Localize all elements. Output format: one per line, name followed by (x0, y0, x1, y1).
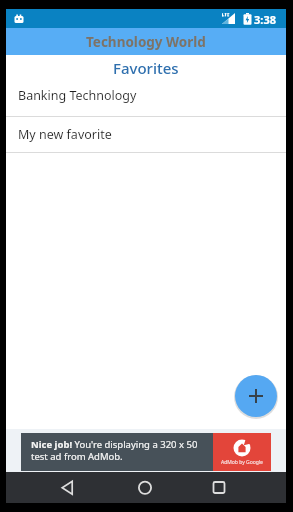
staticText: Nice job! You're displaying a 320 x 50 t… (31, 438, 198, 463)
staticText: 3:38 (254, 12, 276, 27)
button[interactable] (211, 480, 227, 496)
staticText: My new favorite (18, 126, 112, 143)
button[interactable]: My new favorite (6, 117, 286, 152)
staticText: AdMob by Google (221, 459, 263, 466)
button[interactable]: Banking Technology (6, 77, 286, 113)
button[interactable] (235, 375, 277, 417)
staticText: Favorites (113, 58, 179, 78)
staticText: Technology World (86, 33, 206, 51)
button[interactable] (60, 480, 76, 496)
button[interactable]: Nice job! You're displaying a 320 x 50 t… (21, 433, 271, 471)
button[interactable] (137, 480, 153, 496)
staticText: Banking Technology (18, 87, 137, 104)
